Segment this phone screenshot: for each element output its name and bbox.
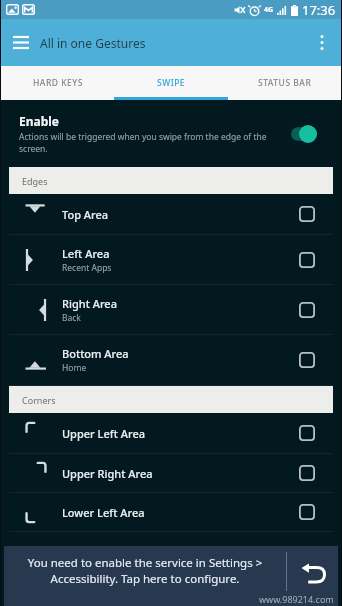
button[interactable]: More options <box>303 19 341 66</box>
staticText: Corners <box>22 394 56 406</box>
staticText: HARD KEYS <box>33 77 83 89</box>
button[interactable]: Upper Left Area <box>1 413 341 453</box>
button[interactable]: Open navigation drawer <box>1 19 40 66</box>
button[interactable]: Left Area <box>272 235 341 284</box>
button[interactable]: STATUS BAR <box>228 66 341 100</box>
staticText: Left Area <box>62 246 110 261</box>
staticText: Right Area <box>62 296 117 311</box>
button[interactable]: Top Area <box>1 194 341 234</box>
button[interactable]: Upper Right Area <box>272 454 341 492</box>
staticText: Home <box>62 362 87 374</box>
button[interactable]: Enable <box>1 100 341 167</box>
staticText: Enable <box>19 113 60 129</box>
staticText: 4G <box>264 5 274 15</box>
button[interactable]: You need to enable the service in Settin… <box>4 546 286 606</box>
staticText: Lower Left Area <box>62 505 145 520</box>
staticText: Edges <box>22 175 48 187</box>
button[interactable]: Lower Left Area <box>1 493 341 531</box>
staticText: Back <box>62 312 81 324</box>
staticText: You need to enable the service in Settin… <box>10 555 280 586</box>
staticText: 17:36 <box>302 1 336 19</box>
staticText: Top Area <box>62 207 109 222</box>
staticText: Upper Left Area <box>62 426 146 441</box>
button[interactable]: Right Area <box>272 285 341 334</box>
button[interactable]: Bottom Area <box>1 335 341 385</box>
staticText: Upper Right Area <box>62 466 153 481</box>
staticText: All in one Gestures <box>40 35 146 51</box>
staticText: www.989214.com <box>259 593 334 605</box>
button[interactable]: Back <box>287 546 338 601</box>
button[interactable]: SWIPE <box>115 66 228 100</box>
button[interactable]: Lower Left Area <box>272 493 341 531</box>
staticText: Actions will be triggered when you swipe… <box>19 131 283 155</box>
button[interactable]: Right Area <box>1 285 341 334</box>
button[interactable]: HARD KEYS <box>1 66 115 100</box>
staticText: Bottom Area <box>62 346 129 361</box>
button[interactable]: Left Area <box>1 235 341 284</box>
staticText: Recent Apps <box>62 262 112 274</box>
staticText: SWIPE <box>157 77 186 89</box>
button[interactable]: Bottom Area <box>272 335 341 385</box>
button[interactable]: Top Area <box>272 194 341 234</box>
staticText: STATUS BAR <box>258 77 312 89</box>
button[interactable]: Upper Right Area <box>1 454 341 492</box>
button[interactable]: Upper Left Area <box>272 413 341 453</box>
